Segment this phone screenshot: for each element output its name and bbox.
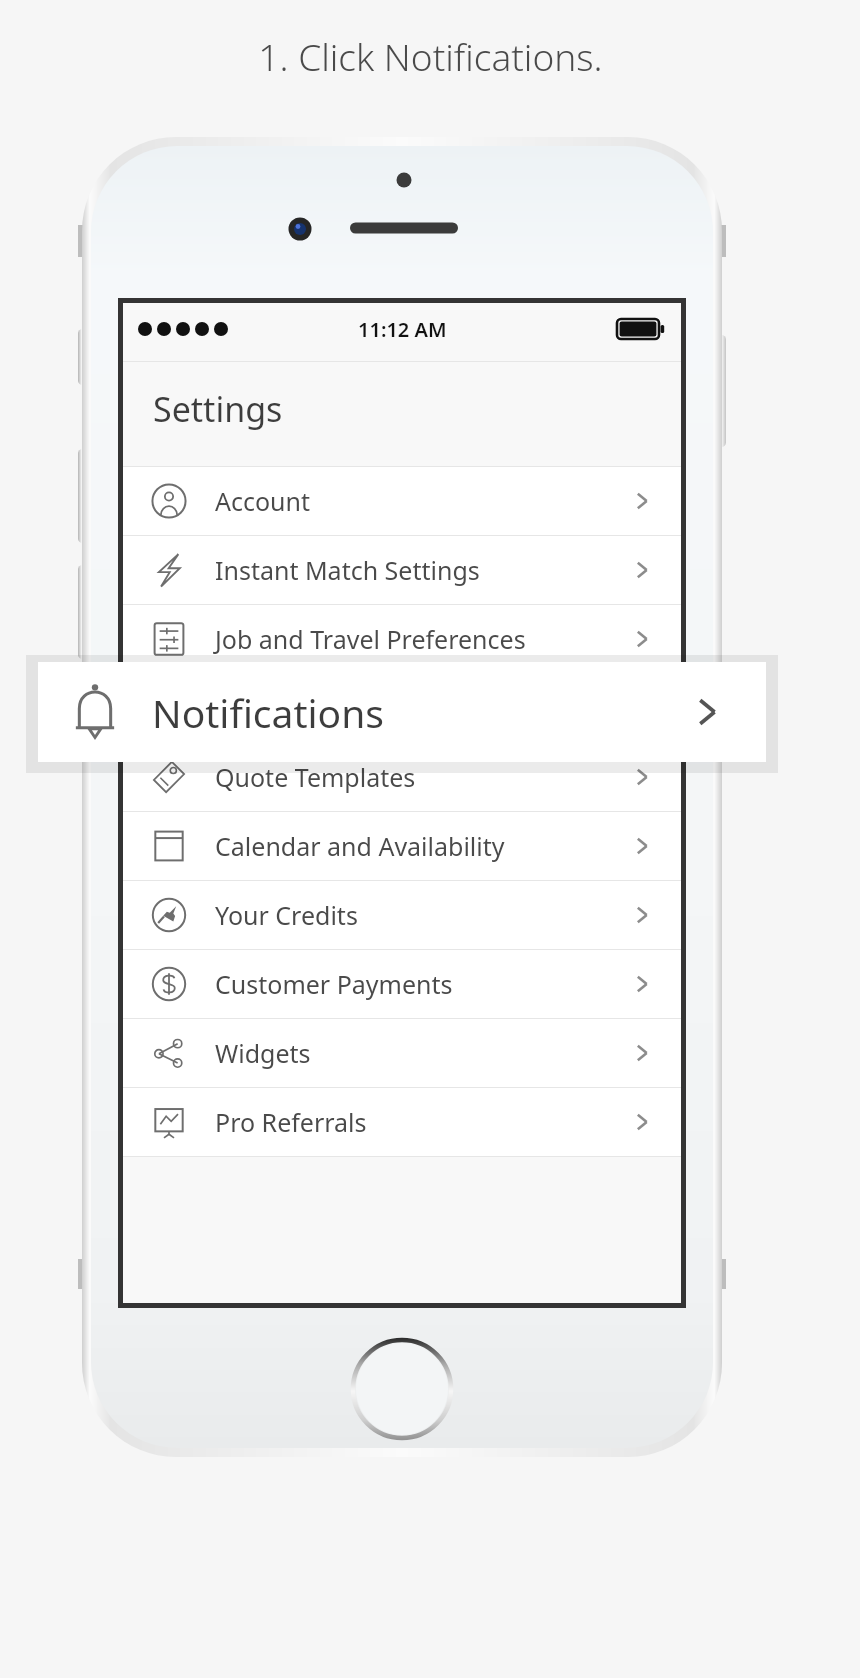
button[interactable]: Notifications: [38, 662, 766, 762]
staticText: Notifications: [215, 691, 364, 725]
staticText: Calendar and Availability: [215, 829, 505, 863]
button[interactable]: Quote Templates: [123, 743, 681, 811]
staticText: Widgets: [215, 1036, 311, 1070]
staticText: Settings: [153, 386, 283, 432]
staticText: Instant Match Settings: [215, 553, 480, 587]
staticText: Your Credits: [215, 898, 358, 932]
staticText: Job and Travel Preferences: [215, 622, 526, 656]
staticText: 11:12 AM: [358, 316, 447, 343]
button[interactable]: Notifications: [123, 674, 681, 742]
staticText: Customer Payments: [215, 967, 453, 1001]
button[interactable]: Calendar and Availability: [123, 812, 681, 880]
button[interactable]: Widgets: [123, 1019, 681, 1087]
button[interactable]: Instant Match Settings: [123, 536, 681, 604]
button[interactable]: Job and Travel Preferences: [123, 605, 681, 673]
staticText: Account: [215, 484, 311, 518]
button[interactable]: Account: [123, 467, 681, 535]
staticText: 1. Click Notifications.: [258, 31, 603, 81]
button[interactable]: Your Credits: [123, 881, 681, 949]
button[interactable]: Customer Payments: [123, 950, 681, 1018]
staticText: Quote Templates: [215, 760, 416, 794]
staticText: Notifications: [152, 686, 384, 739]
button[interactable]: Pro Referrals: [123, 1088, 681, 1156]
staticText: Pro Referrals: [215, 1105, 367, 1139]
